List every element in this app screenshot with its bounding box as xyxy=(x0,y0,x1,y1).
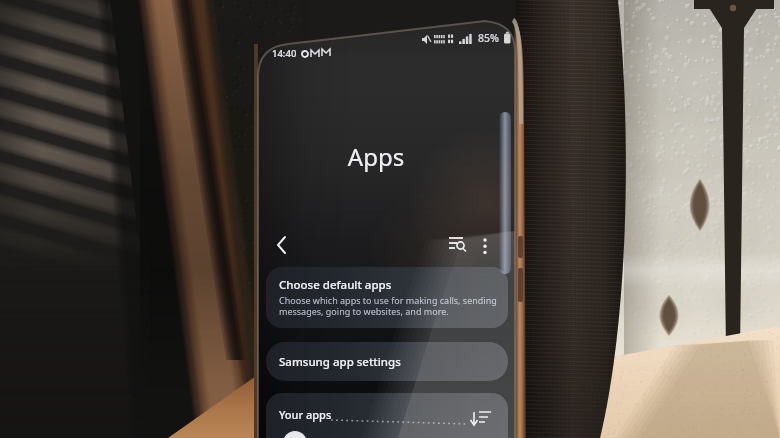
staticText: Samsung app settings xyxy=(279,354,401,370)
button[interactable]: Navigate up xyxy=(266,228,300,262)
button[interactable]: Choose default apps xyxy=(266,267,508,328)
staticText: Choose default apps xyxy=(279,277,392,293)
staticText: Apps xyxy=(300,140,452,173)
button[interactable]: Samsung app settings xyxy=(266,342,508,381)
button[interactable]: More options xyxy=(473,228,499,262)
button[interactable]: Sort xyxy=(469,405,499,431)
staticText: Your apps xyxy=(279,407,332,422)
staticText: Choose which apps to use for making call… xyxy=(279,294,497,318)
staticText: 85% xyxy=(478,31,499,45)
button[interactable]: Search settings xyxy=(442,228,474,262)
staticText: 14:40 xyxy=(272,47,297,60)
